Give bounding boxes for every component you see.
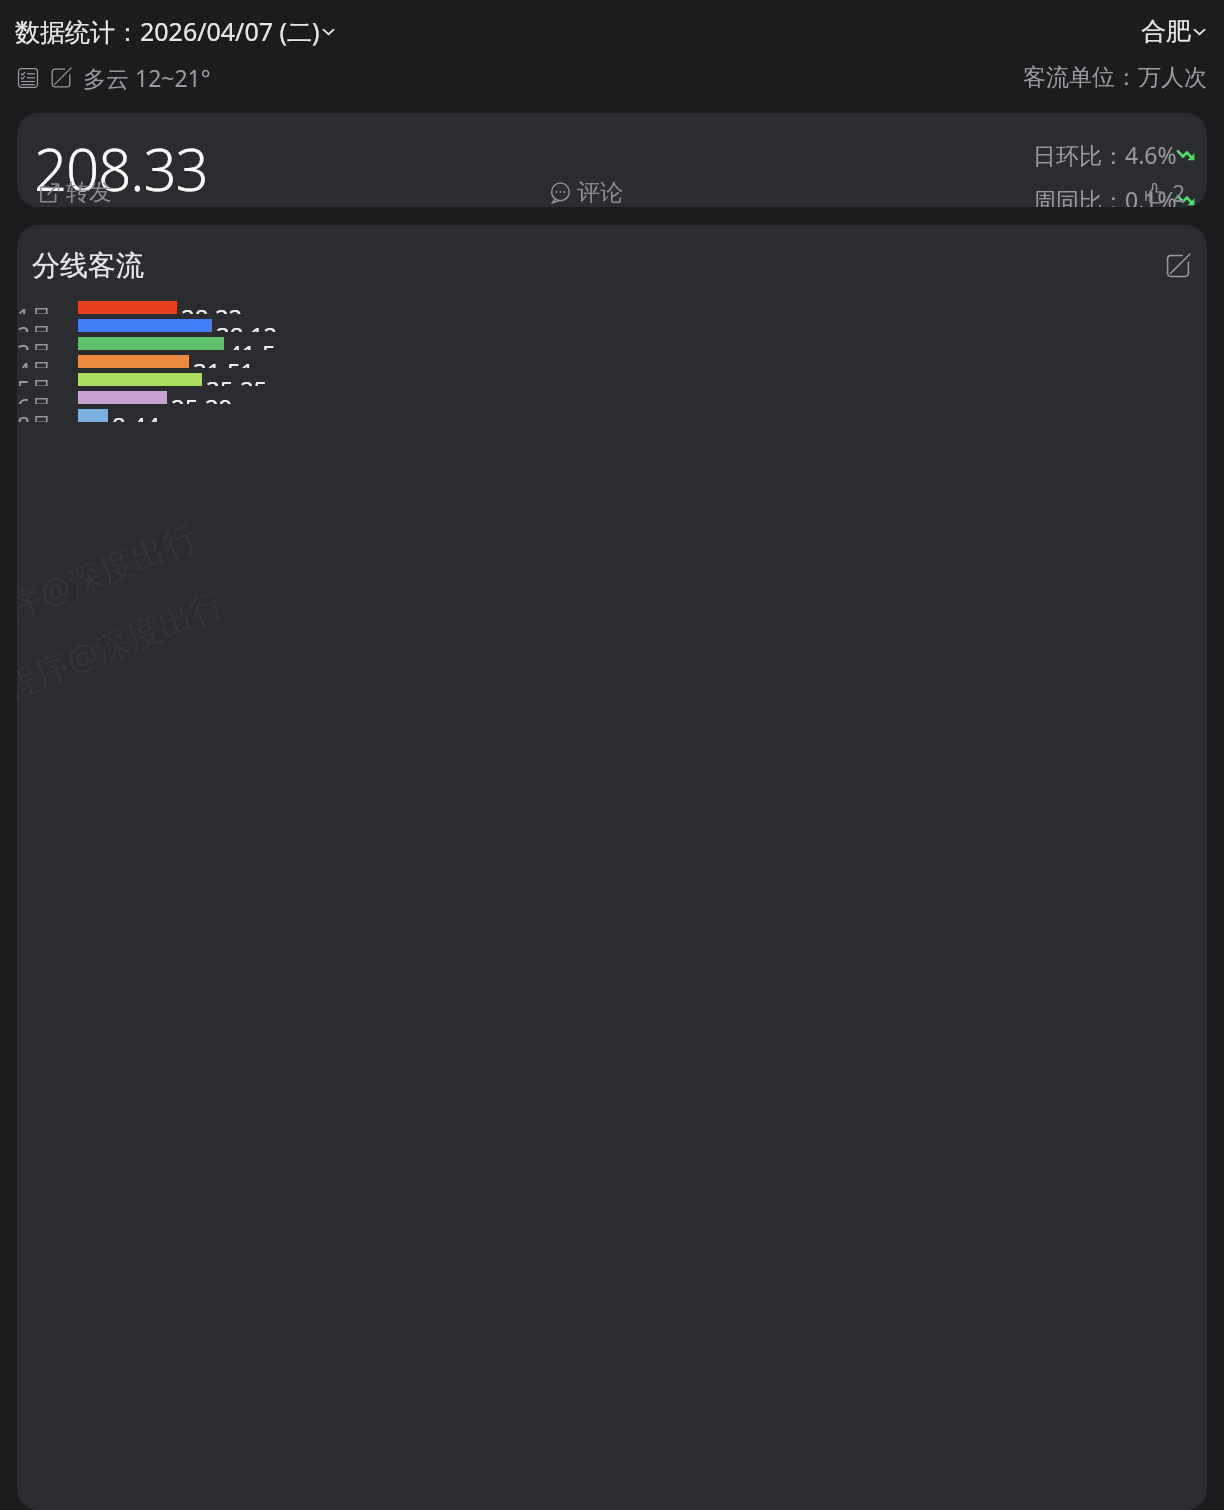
staticText: 日环比：4.6% [1033,139,1177,170]
staticText: 1号线 [17,301,71,314]
button[interactable]: 编辑分线客流 [1164,252,1192,280]
button[interactable]: 208.33 [17,113,1207,207]
staticText: 多云 12~21° [83,62,211,93]
staticText: 4号线 [17,355,71,368]
staticText: 客流单位：万人次 [1023,63,1207,92]
staticText: 8号线 [17,409,71,422]
staticText: 8.44 [112,409,160,422]
staticText: 转发 [66,178,112,207]
staticText: 数据统计：2026/04/07 (二) [15,14,320,48]
staticText: 分线客流 [32,248,144,283]
button[interactable]: 数据列表 [16,66,40,90]
button[interactable]: 合肥 [1141,16,1207,47]
staticText: 2 [1172,177,1186,207]
staticText: 6号线 [17,391,71,404]
staticText: 25.29 [171,391,233,404]
button[interactable]: 转发 [38,178,112,207]
staticText: 35.25 [206,373,268,386]
staticText: 5号线 [17,373,71,386]
staticText: 周同比：0.1% [1033,184,1177,207]
staticText: 评论 [577,178,623,207]
staticText: 41.5 [228,337,276,350]
staticText: 31.51 [193,355,255,368]
staticText: 2号线 [17,319,71,332]
staticText: 合肥 [1141,16,1191,47]
staticText: 3号线 [17,337,71,350]
staticText: 208.33 [34,129,208,207]
button[interactable]: 数据统计：2026/04/07 (二) [15,14,336,48]
button[interactable]: 小程序@深度出行 [17,225,1207,1510]
button[interactable]: 评论 [549,178,623,207]
button[interactable]: 2 [1144,177,1186,207]
button[interactable]: 编辑 [49,66,73,90]
staticText: 28.22 [181,301,243,314]
staticText: 38.12 [216,319,278,332]
